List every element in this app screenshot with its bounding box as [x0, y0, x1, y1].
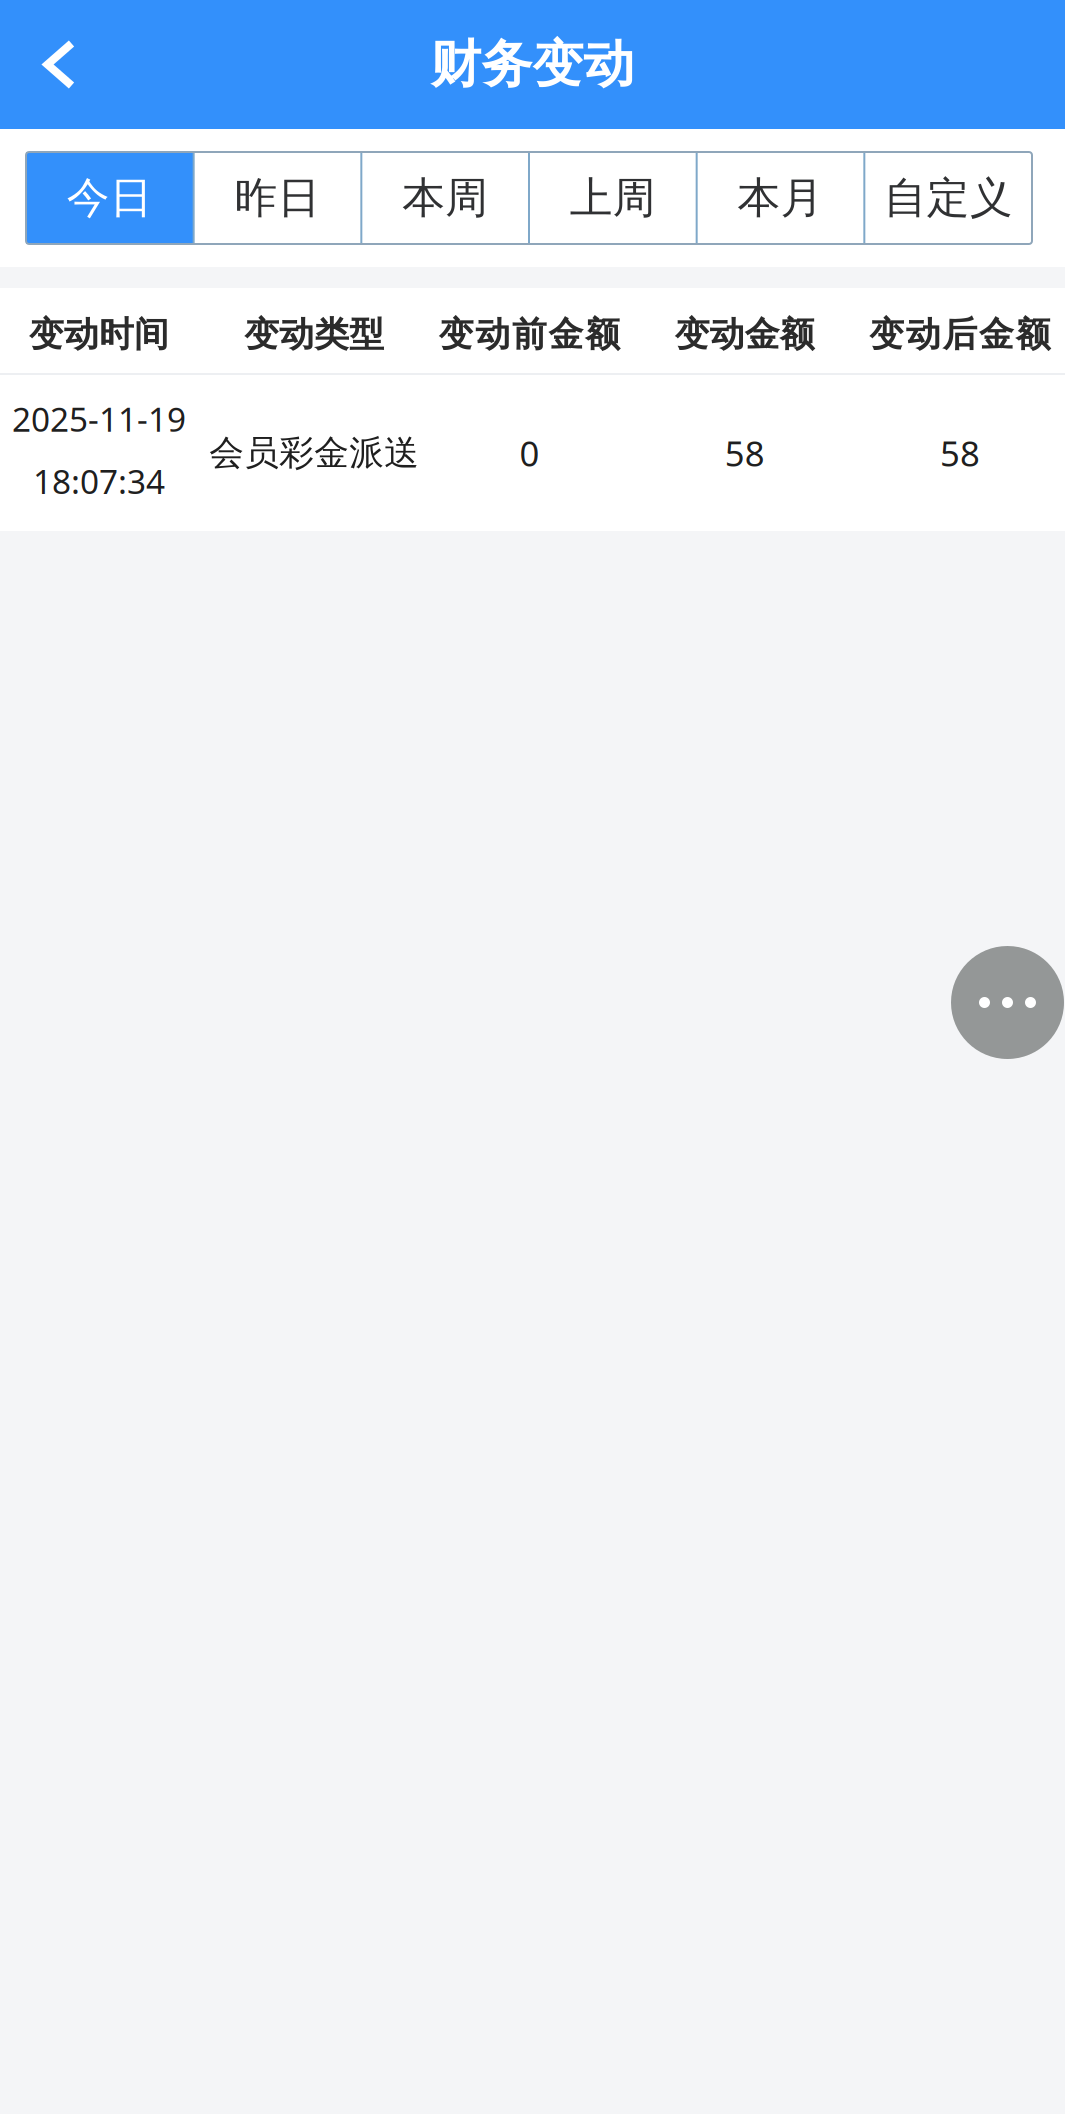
button[interactable]: 本月: [697, 152, 864, 244]
staticText: 0: [519, 430, 539, 476]
staticText: 变动前金额: [439, 313, 620, 356]
staticText: 今日: [67, 172, 153, 224]
staticText: 变动时间: [29, 313, 169, 356]
staticText: 58: [725, 430, 765, 476]
button[interactable]: 本周: [361, 152, 529, 244]
staticText: 变动类型: [244, 313, 384, 356]
staticText: 变动后金额: [869, 313, 1051, 356]
staticText: 2025-11-19: [12, 397, 186, 441]
staticText: 本月: [737, 172, 823, 224]
button[interactable]: 自定义: [864, 152, 1032, 244]
button[interactable]: 上周: [529, 152, 697, 244]
staticText: 财务变动: [430, 33, 634, 96]
staticText: 变动金额: [675, 313, 815, 356]
staticText: 18:07:34: [33, 459, 165, 503]
staticText: 昨日: [234, 172, 320, 224]
button[interactable]: More options: [951, 946, 1064, 1059]
button[interactable]: Back: [0, 0, 120, 129]
staticText: 自定义: [884, 172, 1013, 224]
staticText: 58: [940, 430, 980, 476]
staticText: 上周: [570, 172, 656, 224]
staticText: 本周: [402, 172, 488, 224]
button[interactable]: 昨日: [194, 152, 361, 244]
button[interactable]: 今日: [26, 152, 194, 244]
staticText: 会员彩金派送: [209, 432, 419, 474]
